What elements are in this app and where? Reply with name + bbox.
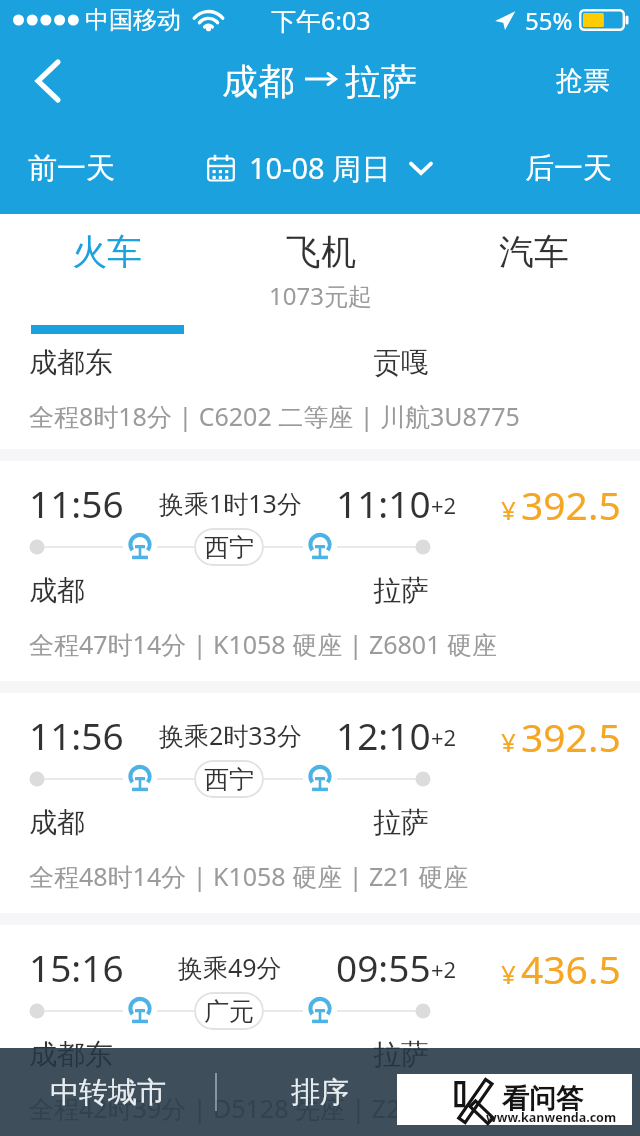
button[interactable]: 11:56	[0, 461, 640, 681]
staticText: ¥	[534, 260, 549, 295]
button[interactable]: 10-08 周日	[198, 122, 442, 214]
staticText: 拉萨	[373, 805, 429, 840]
staticText: 中转城市	[50, 1074, 166, 1111]
button[interactable]: 火车	[0, 214, 214, 334]
staticText: 下午6:03	[271, 3, 371, 37]
staticText: 11:56	[29, 710, 124, 760]
staticText: 08:20	[29, 246, 124, 296]
staticText: 11:56	[29, 478, 124, 528]
staticText: ¥	[501, 492, 516, 527]
staticText: 成都东	[29, 1037, 113, 1072]
staticText: 10-08 周日	[249, 148, 391, 188]
button[interactable]: 中转城市	[0, 1048, 216, 1136]
button[interactable]: 汽车	[427, 214, 640, 334]
staticText: 15:16	[29, 942, 124, 992]
staticText: 汽车	[499, 230, 569, 274]
staticText: +2	[431, 954, 457, 984]
staticText: 成都东	[29, 345, 113, 380]
staticText: ¥	[501, 724, 516, 759]
staticText: 成都	[29, 573, 85, 608]
staticText: 排序	[291, 1074, 349, 1111]
staticText: 全程48时14分 | K1058 硬座 | Z21 硬座	[29, 859, 469, 893]
staticText: 拉萨	[373, 1037, 429, 1072]
staticText: 436.5	[521, 942, 621, 995]
button[interactable]: 15:16	[0, 925, 640, 1136]
staticText: +2	[431, 722, 457, 752]
staticText: 西宁	[204, 532, 254, 563]
staticText: 看问答	[502, 1082, 583, 1116]
staticText: 前一天	[28, 150, 115, 187]
staticText: ¥	[501, 956, 516, 991]
staticText: 火车	[72, 230, 142, 274]
staticText: 换乘1时13分	[159, 486, 302, 520]
staticText: 12:10	[336, 710, 431, 760]
staticText: 610	[554, 246, 621, 299]
staticText: 西宁	[204, 764, 254, 795]
staticText: 贡嘎	[373, 345, 429, 380]
staticText: 换乘2时33分	[159, 718, 302, 752]
staticText: 广元	[204, 996, 254, 1027]
staticText: 飞机	[286, 230, 356, 274]
staticText: 拉萨	[373, 573, 429, 608]
staticText: 成都	[29, 805, 85, 840]
staticText: 392.5	[521, 478, 621, 531]
staticText: 全程47时14分 | K1058 硬座 | Z6801 硬座	[29, 627, 497, 661]
button[interactable]: 前一天	[0, 122, 141, 214]
staticText: 11:10	[336, 478, 431, 528]
staticText: www.kanwenda.com	[486, 1109, 617, 1126]
staticText: 拉萨	[345, 59, 417, 104]
button[interactable]: 抢票	[530, 40, 640, 122]
staticText: 中国移动	[85, 5, 181, 35]
staticText: 抢票	[556, 64, 610, 98]
button[interactable]: 11:56	[0, 693, 640, 913]
staticText: 全程8时18分 | C6202 二等座 | 川航3U8775	[29, 399, 520, 433]
staticText: 16:38	[336, 246, 431, 296]
staticText: 成都	[222, 59, 294, 104]
button[interactable]: 后一天	[499, 122, 640, 214]
button[interactable]: Back	[0, 40, 96, 122]
staticText: 392.5	[521, 710, 621, 763]
button[interactable]: 排序	[217, 1048, 423, 1136]
button[interactable]: 08:20	[0, 229, 640, 449]
staticText: +2	[431, 490, 457, 520]
button[interactable]: 飞机	[214, 214, 427, 334]
staticText: 09:55	[336, 942, 431, 992]
staticText: 换乘49分	[178, 950, 282, 984]
staticText: 55%	[525, 4, 573, 37]
staticText: 全程42时39分 | D5128 先座 | Z223 硬座	[29, 1091, 486, 1125]
staticText: 后一天	[525, 150, 612, 187]
staticText: 1073元起	[269, 279, 372, 312]
